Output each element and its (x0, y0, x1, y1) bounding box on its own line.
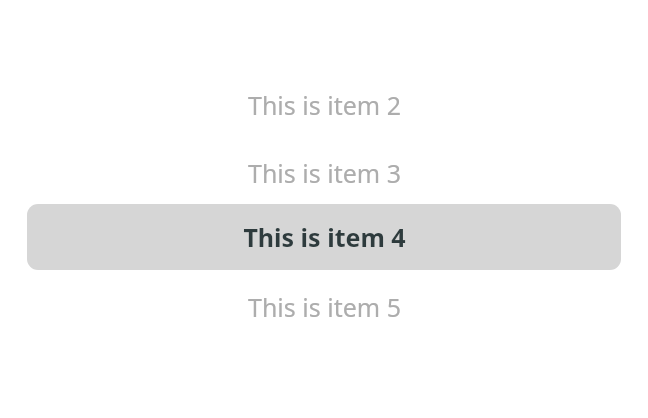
staticText: This is item 3 (248, 156, 401, 190)
button[interactable]: This is item 5 (0, 285, 648, 329)
staticText: This is item 2 (248, 88, 401, 122)
staticText: This is item 5 (248, 290, 401, 324)
staticText: This is item 4 (243, 220, 406, 254)
button[interactable]: This is item 3 (0, 151, 648, 195)
button[interactable]: This is item 4 (27, 204, 621, 270)
button[interactable]: This is item 2 (0, 83, 648, 127)
